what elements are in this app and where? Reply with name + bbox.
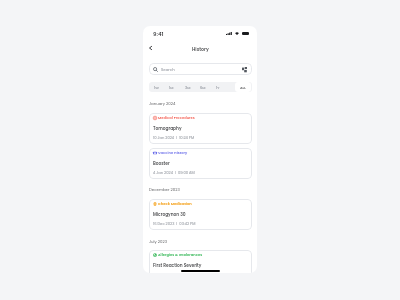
button[interactable]: Back [144,42,156,54]
staticText: December 2023 [149,187,180,192]
button[interactable]: Vaccine History [149,148,252,179]
staticText: Tomography [153,125,182,131]
button[interactable]: ALL [235,82,251,92]
staticText: 16 Dec 2023 | 03:42 PM [153,221,196,226]
staticText: 1Y [216,85,220,90]
button[interactable]: 1Y [210,82,225,92]
staticText: Check Medication [158,201,192,206]
staticText: July 2023 [149,239,167,244]
staticText: 1M [169,85,174,90]
button[interactable]: Check Medication [149,199,252,230]
staticText: 6M [200,85,206,90]
staticText: 9:41 [153,30,164,38]
button[interactable]: 1M [164,82,179,92]
button[interactable]: 3M [180,82,195,92]
button[interactable]: Medical Procedures [149,113,252,144]
button[interactable]: 6M [195,82,210,92]
staticText: Vaccine History [158,150,188,155]
staticText: 3M [185,85,191,90]
button[interactable]: Search [149,63,252,75]
staticText: 1W [154,85,159,90]
staticText: Microgynon 30 [153,211,186,217]
staticText: Booster [153,160,170,166]
staticText: History [192,46,209,53]
button[interactable]: 1W [149,82,164,92]
staticText: ALL [240,85,246,90]
staticText: First Reaction Severity [153,262,202,268]
staticText: Medical Procedures [158,115,195,120]
staticText: January 2024 [149,101,176,106]
button[interactable]: Allergies & Intolerances [149,250,252,273]
staticText: 4 Jan 2024 | 09:00 AM [153,170,195,175]
staticText: Allergies & Intolerances [158,252,203,257]
staticText: Search [161,67,175,72]
staticText: 10 Jan 2024 | 10:24 PM [153,135,195,140]
